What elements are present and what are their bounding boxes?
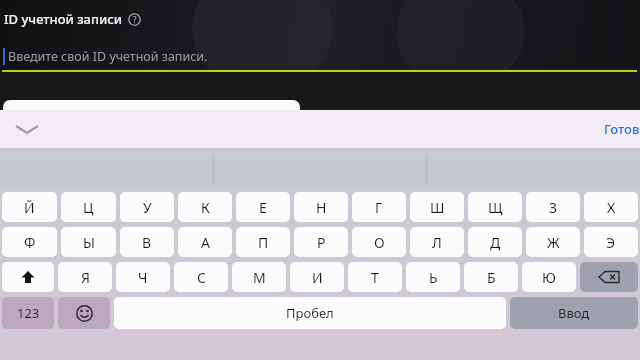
button[interactable]: З (526, 192, 580, 222)
button[interactable]: Пробел (114, 297, 506, 329)
staticText: Ф (24, 233, 36, 252)
button[interactable]: Ввод (510, 297, 638, 329)
button[interactable]: Ш (410, 192, 464, 222)
button[interactable]: Свернуть клавиатуру (12, 114, 42, 144)
staticText: А (201, 233, 210, 252)
button[interactable]: И (290, 262, 344, 292)
staticText: Л (432, 233, 442, 252)
staticText: Т (371, 268, 379, 287)
staticText: Готово (604, 120, 640, 138)
staticText: Ш (430, 198, 445, 217)
button[interactable]: Справка (128, 13, 141, 26)
button[interactable]: Х (584, 192, 638, 222)
staticText: П (258, 233, 269, 252)
button[interactable]: Shift (2, 262, 54, 292)
button[interactable]: Э (584, 227, 638, 257)
staticText: Введите свой ID учетной записи. (8, 48, 208, 65)
staticText: Х (607, 198, 616, 217)
staticText: Ч (138, 268, 148, 287)
button[interactable]: С (174, 262, 228, 292)
button[interactable]: Ж (526, 227, 580, 257)
button[interactable]: Ц (61, 192, 116, 222)
button[interactable]: 123 (2, 297, 54, 329)
button[interactable]: А (178, 227, 232, 257)
button[interactable]: Д (468, 227, 522, 257)
button[interactable]: Е (236, 192, 290, 222)
staticText: С (197, 268, 206, 287)
button[interactable]: П (236, 227, 290, 257)
staticText: 123 (17, 304, 40, 322)
staticText: К (201, 198, 210, 217)
staticText: Ы (83, 233, 95, 252)
staticText: ? (133, 14, 137, 25)
staticText: Д (490, 233, 501, 252)
staticText: Ю (542, 268, 556, 287)
button[interactable]: Щ (468, 192, 522, 222)
button[interactable]: Введите свой ID учетной записи. (0, 38, 640, 72)
button[interactable]: Удалить (580, 262, 638, 292)
button[interactable]: Готово (598, 116, 640, 142)
button[interactable]: Ч (116, 262, 170, 292)
staticText: У (143, 198, 152, 217)
button[interactable]: Й (2, 192, 57, 222)
button[interactable]: Я (58, 262, 112, 292)
button[interactable]: В (120, 227, 174, 257)
staticText: Пробел (286, 304, 334, 322)
staticText: Б (487, 268, 496, 287)
staticText: В (142, 233, 152, 252)
button[interactable]: Н (294, 192, 348, 222)
button[interactable]: Р (294, 227, 348, 257)
button[interactable]: М (232, 262, 286, 292)
staticText: Н (316, 198, 327, 217)
staticText: Э (606, 233, 616, 252)
staticText: Р (317, 233, 326, 252)
button[interactable]: Ь (406, 262, 460, 292)
staticText: ID учетной записи (4, 10, 123, 28)
staticText: Ж (547, 233, 560, 252)
button[interactable]: Эмодзи (58, 297, 110, 329)
staticText: И (312, 268, 323, 287)
staticText: О (374, 233, 385, 252)
button[interactable]: Б (464, 262, 518, 292)
button[interactable]: К (178, 192, 232, 222)
button[interactable]: Л (410, 227, 464, 257)
staticText: Щ (488, 198, 503, 217)
staticText: Ввод (558, 304, 590, 322)
staticText: Е (259, 198, 267, 217)
button[interactable]: У (120, 192, 174, 222)
staticText: Ь (429, 268, 438, 287)
staticText: М (253, 268, 266, 287)
staticText: Ц (83, 198, 94, 217)
staticText: З (549, 198, 558, 217)
button[interactable]: Г (352, 192, 406, 222)
button[interactable]: Т (348, 262, 402, 292)
button[interactable]: Ы (61, 227, 116, 257)
button[interactable]: Ф (2, 227, 57, 257)
staticText: Й (24, 198, 35, 217)
staticText: Г (375, 198, 383, 217)
button[interactable]: Ю (522, 262, 576, 292)
staticText: Я (81, 268, 90, 287)
button[interactable]: О (352, 227, 406, 257)
